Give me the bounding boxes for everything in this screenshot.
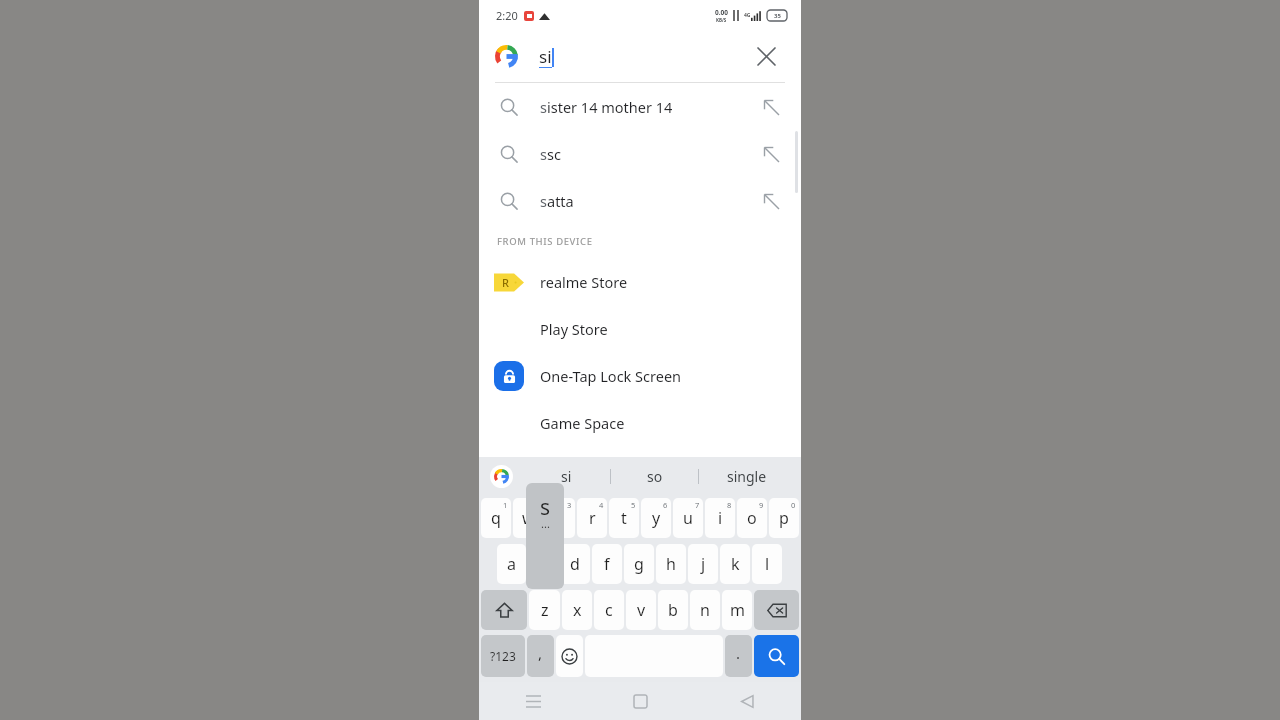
staticText: s	[540, 144, 547, 164]
button[interactable]: o	[737, 498, 767, 538]
staticText: .	[736, 643, 741, 663]
button[interactable]: i	[705, 498, 735, 538]
staticText: 0	[791, 500, 796, 510]
button[interactable]: k	[720, 544, 750, 584]
staticText: ?123	[490, 648, 516, 664]
button[interactable]: Insert suggestion	[749, 179, 793, 223]
button[interactable]: y	[641, 498, 671, 538]
button[interactable]: Backspace	[754, 590, 799, 630]
staticText: realme Store	[540, 272, 628, 292]
staticText: 35	[774, 12, 781, 20]
staticText: w	[522, 507, 535, 529]
staticText: k	[731, 553, 740, 575]
staticText: Play Store	[540, 319, 608, 339]
staticText: atta	[547, 191, 574, 211]
button[interactable]: ,	[527, 635, 554, 677]
staticText: 9	[759, 500, 764, 510]
staticText: One-Tap Lock Screen	[540, 366, 682, 386]
staticText: FROM THIS DEVICE	[497, 235, 593, 248]
button[interactable]: c	[594, 590, 624, 630]
staticText: ...	[541, 516, 550, 531]
button[interactable]: Shift	[481, 590, 527, 630]
button[interactable]: l	[752, 544, 782, 584]
staticText: KB/S	[716, 17, 727, 23]
staticText: 3	[567, 500, 572, 510]
button[interactable]: j	[688, 544, 718, 584]
staticText: d	[570, 553, 580, 575]
button[interactable]: .	[725, 635, 752, 677]
staticText: 6	[663, 500, 668, 510]
staticText: ,	[538, 643, 543, 663]
button[interactable]: Home	[587, 682, 694, 720]
button[interactable]: z	[529, 590, 560, 630]
button[interactable]: si	[523, 457, 610, 495]
button[interactable]: Recents	[479, 682, 587, 720]
staticText: z	[541, 599, 549, 621]
staticText: si	[561, 467, 572, 486]
button[interactable]: e	[545, 498, 575, 538]
staticText: 0.00	[715, 8, 728, 17]
button[interactable]: g	[624, 544, 654, 584]
staticText: p	[779, 507, 789, 529]
button[interactable]: ?123	[481, 635, 525, 677]
button[interactable]: single	[699, 457, 795, 495]
button[interactable]: Insert suggestion	[749, 132, 793, 176]
staticText: 4	[599, 500, 604, 510]
button[interactable]: v	[626, 590, 656, 630]
button[interactable]: Google	[490, 465, 513, 488]
staticText: 5	[631, 500, 636, 510]
button[interactable]: R	[479, 258, 801, 305]
staticText: sc	[547, 144, 561, 164]
button[interactable]: Game Space	[479, 399, 801, 446]
button[interactable]: w	[513, 498, 543, 538]
staticText: si	[539, 45, 552, 68]
button[interactable]: Back	[694, 682, 801, 720]
staticText: g	[634, 553, 644, 575]
button[interactable]: Insert suggestion	[749, 85, 793, 129]
staticText: r	[589, 507, 596, 529]
button[interactable]: s	[479, 130, 801, 177]
button[interactable]: so	[611, 457, 698, 495]
button[interactable]: One-Tap Lock Screen	[479, 352, 801, 399]
staticText: l	[765, 553, 770, 575]
button[interactable]: h	[656, 544, 686, 584]
staticText: single	[727, 467, 767, 486]
button[interactable]: p	[769, 498, 799, 538]
button[interactable]: q	[481, 498, 511, 538]
staticText: R	[502, 275, 509, 290]
staticText: so	[647, 467, 663, 486]
staticText: 7	[695, 500, 700, 510]
staticText: o	[747, 507, 757, 529]
button[interactable]: n	[690, 590, 720, 630]
staticText: 4G	[744, 12, 751, 19]
button[interactable]: m	[722, 590, 752, 630]
staticText: s	[540, 97, 547, 117]
button[interactable]: Search	[754, 635, 799, 677]
staticText: c	[605, 599, 613, 621]
staticText: s	[540, 493, 551, 522]
button[interactable]: u	[673, 498, 703, 538]
button[interactable]: Emoji	[556, 635, 583, 677]
staticText: a	[507, 553, 516, 575]
button[interactable]: b	[658, 590, 688, 630]
staticText: ister 14 mother 14	[547, 97, 673, 117]
button[interactable]: f	[592, 544, 622, 584]
button[interactable]: s	[479, 177, 801, 224]
staticText: n	[700, 599, 710, 621]
button[interactable]: Clear search	[747, 37, 785, 75]
staticText: f	[604, 553, 610, 575]
button[interactable]: d	[560, 544, 590, 584]
staticText: 8	[727, 500, 732, 510]
button[interactable]: r	[577, 498, 607, 538]
button[interactable]: Play Store	[479, 305, 801, 352]
staticText: u	[683, 507, 693, 529]
button[interactable]: t	[609, 498, 639, 538]
button[interactable]: x	[562, 590, 592, 630]
button[interactable]: s	[479, 83, 801, 130]
button[interactable]: a	[497, 544, 526, 584]
staticText: t	[621, 507, 627, 529]
